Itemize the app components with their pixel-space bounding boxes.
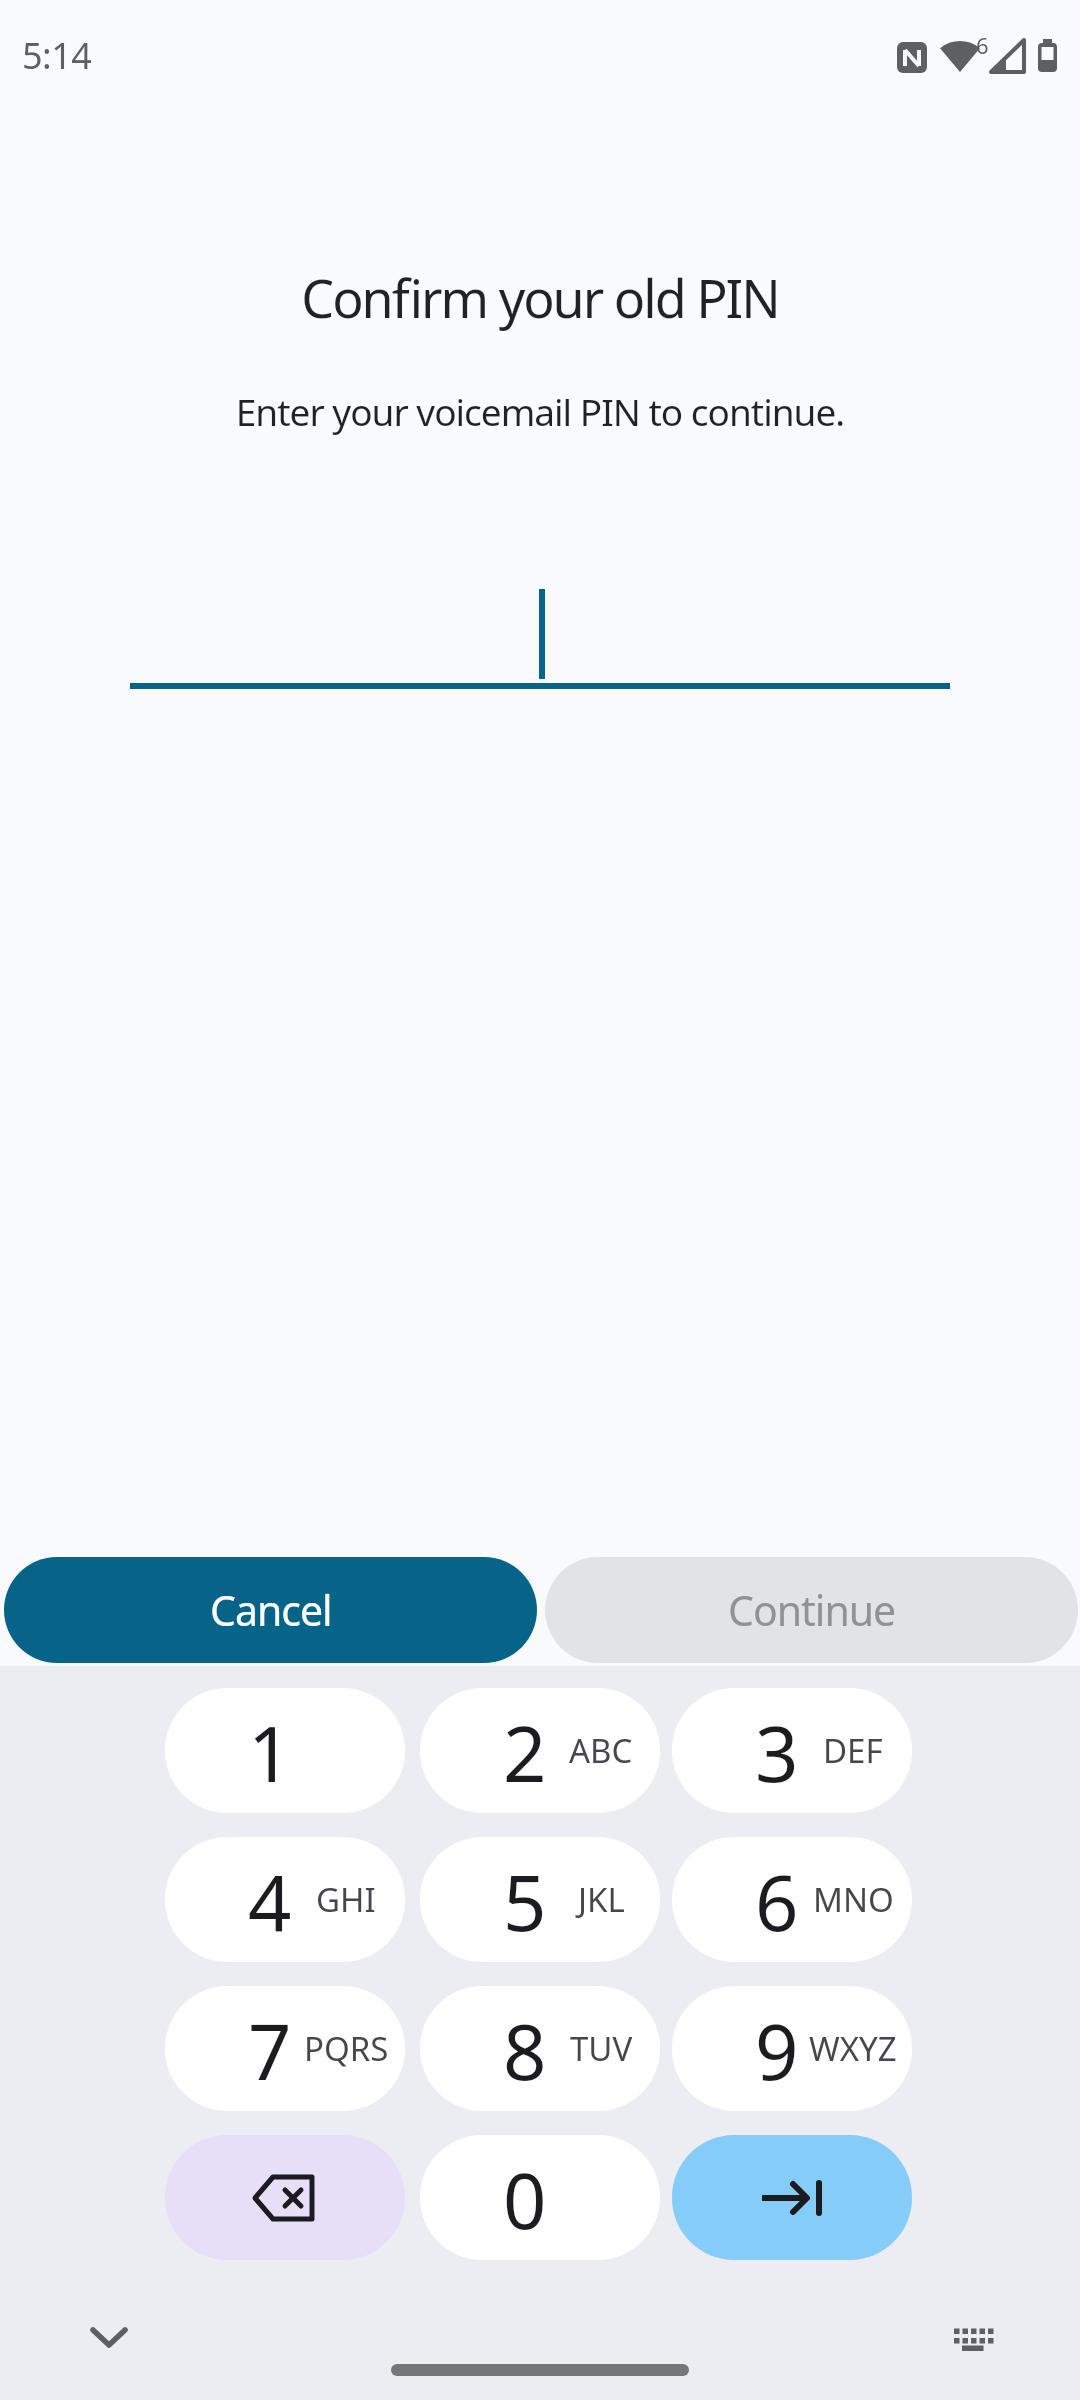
- staticText: 4: [248, 1850, 292, 1954]
- staticText: 6: [976, 30, 989, 60]
- button[interactable]: [165, 2135, 405, 2260]
- button[interactable]: [672, 2135, 912, 2260]
- button[interactable]: Continue: [545, 1557, 1078, 1663]
- staticText: 9: [755, 1999, 799, 2103]
- staticText: 8: [503, 1999, 547, 2103]
- button[interactable]: 9: [672, 1986, 912, 2111]
- staticText: JKL: [578, 1877, 625, 1922]
- staticText: Cancel: [210, 1582, 332, 1638]
- button[interactable]: 8: [420, 1986, 660, 2111]
- staticText: ABC: [569, 1728, 633, 1773]
- button[interactable]: 5: [420, 1837, 660, 1962]
- staticText: PQRS: [304, 2026, 389, 2071]
- button[interactable]: 4: [165, 1837, 405, 1962]
- staticText: 6: [755, 1850, 799, 1954]
- staticText: Enter your voicemail PIN to continue.: [0, 386, 1080, 436]
- staticText: 5:14: [22, 31, 92, 80]
- button[interactable]: 7: [165, 1986, 405, 2111]
- staticText: DEF: [823, 1728, 883, 1773]
- button[interactable]: 1: [165, 1688, 405, 1813]
- staticText: GHI: [316, 1877, 376, 1922]
- button[interactable]: 6: [672, 1837, 912, 1962]
- staticText: 7: [248, 1999, 292, 2103]
- staticText: MNO: [813, 1877, 894, 1922]
- staticText: 0: [503, 2148, 547, 2252]
- staticText: TUV: [570, 2026, 633, 2071]
- button[interactable]: Cancel: [4, 1557, 537, 1663]
- staticText: 5: [503, 1850, 547, 1954]
- staticText: Continue: [728, 1582, 896, 1638]
- staticText: Confirm your old PIN: [0, 262, 1080, 333]
- staticText: 3: [755, 1701, 799, 1805]
- button[interactable]: 0: [420, 2135, 660, 2260]
- button[interactable]: 2: [420, 1688, 660, 1813]
- staticText: 2: [503, 1701, 547, 1805]
- staticText: WXYZ: [809, 2026, 897, 2071]
- staticText: 1: [248, 1701, 292, 1805]
- button[interactable]: 3: [672, 1688, 912, 1813]
